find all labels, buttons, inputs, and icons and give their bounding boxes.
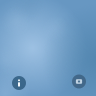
button[interactable]: Info bbox=[12, 76, 26, 90]
button[interactable]: Camera bbox=[72, 74, 86, 88]
